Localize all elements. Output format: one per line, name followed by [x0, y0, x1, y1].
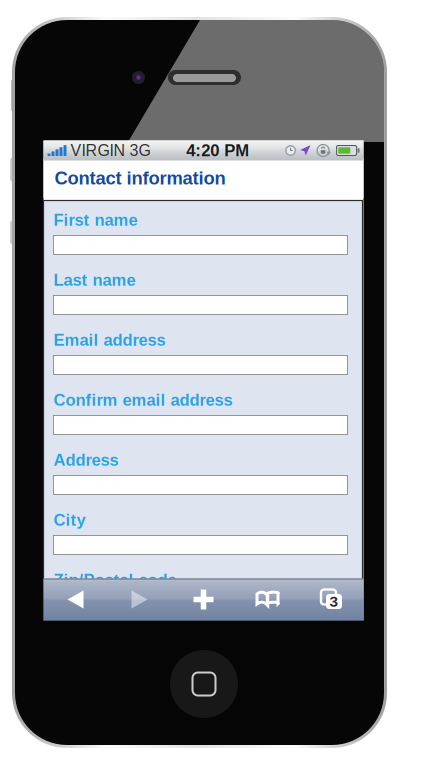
staticText: City: [53, 511, 85, 529]
staticText: Contact information: [54, 168, 225, 188]
staticText: Confirm email address: [53, 391, 232, 409]
staticText: VIRGIN: [70, 142, 125, 159]
staticText: First name: [53, 211, 137, 229]
staticText: 4:20 PM: [186, 141, 249, 160]
staticText: 3: [329, 593, 338, 610]
button[interactable]: Bookmarks: [235, 578, 299, 620]
staticText: Zip/Postal code: [53, 571, 176, 589]
staticText: Address: [53, 451, 118, 469]
button[interactable]: Back: [43, 578, 107, 620]
staticText: 3G: [129, 142, 150, 159]
staticText: Last name: [53, 271, 135, 289]
button[interactable]: Forward: [107, 578, 171, 620]
button[interactable]: Tabs: [299, 578, 363, 620]
button[interactable]: Add bookmark: [171, 578, 235, 620]
staticText: Email address: [53, 331, 165, 349]
